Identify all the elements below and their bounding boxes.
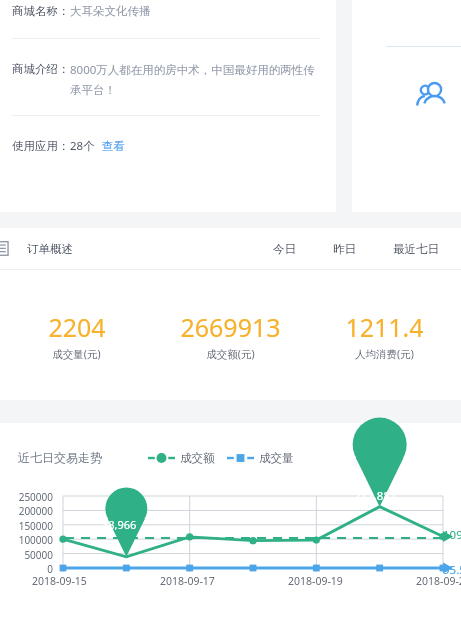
staticText: 商城名称：	[12, 4, 70, 18]
staticText: 212,887	[354, 488, 397, 504]
staticText: 大耳朵文化传播	[70, 4, 151, 18]
staticText: 250000	[0, 490, 53, 504]
staticText: 0	[0, 562, 53, 576]
staticText: 2204	[48, 310, 106, 344]
other: Members	[416, 80, 448, 112]
staticText: 成交量	[259, 451, 294, 465]
staticText: 2018-09-15	[32, 574, 87, 588]
button[interactable]: 最近七日	[381, 242, 451, 256]
staticText: 2018-09-17	[160, 574, 215, 588]
staticText: 昨日	[333, 242, 356, 256]
button[interactable]: 成交量	[227, 451, 294, 465]
staticText: 28个	[70, 138, 95, 154]
staticText: 50000	[0, 548, 53, 562]
button[interactable]: Members	[352, 0, 461, 212]
staticText: 商城介绍：	[12, 62, 70, 76]
staticText: 人均消费(元)	[355, 347, 414, 361]
staticText: 订单概述	[27, 242, 73, 256]
staticText: 2669913	[180, 310, 281, 344]
staticText: 95.5	[443, 562, 461, 578]
button[interactable]: 2669913	[153, 310, 307, 361]
staticText: 近七日交易走势	[18, 450, 102, 465]
staticText: 最近七日	[393, 242, 439, 256]
staticText: 成交量(元)	[52, 347, 101, 361]
staticText: 成交额	[180, 451, 215, 465]
button[interactable]: 今日	[261, 242, 308, 256]
button[interactable]: 成交额	[148, 451, 215, 465]
staticText: 200000	[0, 504, 53, 518]
staticText: 今日	[273, 242, 296, 256]
button[interactable]: 1211.4	[307, 310, 461, 361]
staticText: 2018-09-21	[416, 574, 461, 588]
staticText: 成交额(元)	[206, 347, 255, 361]
button[interactable]: 商城名称：	[0, 0, 336, 212]
staticText: 使用应用：	[12, 139, 70, 153]
staticText: 1211.4	[345, 310, 424, 344]
staticText: 2018-09-19	[288, 574, 343, 588]
staticText: 38,966	[102, 517, 137, 532]
button[interactable]: 2204	[0, 310, 153, 361]
staticText: 8000万人都在用的房中术，中国最好用的两性传承平台！	[70, 62, 320, 97]
button[interactable]: 昨日	[321, 242, 368, 256]
staticText: 查看	[102, 139, 125, 153]
button[interactable]: 查看	[102, 139, 125, 153]
staticText: 100000	[0, 533, 53, 547]
staticText: 150000	[0, 519, 53, 533]
staticText: 109,	[443, 527, 461, 543]
